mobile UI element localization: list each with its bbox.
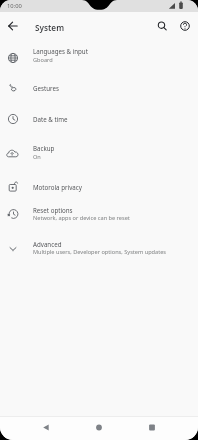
button[interactable] xyxy=(5,18,21,34)
button[interactable] xyxy=(66,416,132,440)
staticText: Advanced xyxy=(33,240,62,248)
staticText: On xyxy=(33,153,41,161)
button[interactable]: Advanced xyxy=(0,228,198,268)
button[interactable]: Date & time xyxy=(0,102,198,135)
staticText: Multiple users, Developer options, Syste… xyxy=(33,248,167,256)
button[interactable] xyxy=(132,416,198,440)
button[interactable]: Reset options xyxy=(0,200,198,228)
staticText: System xyxy=(35,22,65,33)
button[interactable]: Languages & input xyxy=(0,40,198,71)
staticText: Languages & input xyxy=(33,47,88,55)
staticText: Backup xyxy=(33,144,55,152)
button[interactable]: Backup xyxy=(0,135,198,171)
staticText: Gboard xyxy=(33,56,53,64)
button[interactable] xyxy=(177,18,193,34)
staticText: Motorola privacy xyxy=(33,183,82,191)
staticText: Network, apps or device can be reset xyxy=(33,214,130,222)
button[interactable]: Gestures xyxy=(0,71,198,102)
button[interactable]: Motorola privacy xyxy=(0,171,198,200)
button[interactable] xyxy=(0,416,66,440)
staticText: Reset options xyxy=(33,206,73,214)
button[interactable] xyxy=(154,18,170,34)
staticText: Date & time xyxy=(33,115,68,123)
staticText: 10:00 xyxy=(7,2,22,10)
staticText: Gestures xyxy=(33,84,59,92)
